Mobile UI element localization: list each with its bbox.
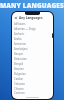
staticText: Any Languages	[19, 16, 43, 20]
button[interactable]: Basque	[12, 51, 53, 56]
staticText: Belarusian	[14, 57, 27, 61]
button[interactable]: Albanian — Shqip	[12, 26, 53, 31]
staticText: Bengali	[14, 62, 24, 66]
button[interactable]: Bosnian	[12, 66, 53, 71]
staticText: Bosnian	[14, 67, 24, 71]
button[interactable]: Catalan	[12, 76, 53, 81]
button[interactable]: Arabic	[12, 36, 53, 41]
button[interactable]: Bulgarian	[12, 71, 53, 76]
button[interactable]: Cebuano	[12, 81, 53, 86]
button[interactable]: Belarusian	[12, 56, 53, 61]
staticText: Afrikaans	[14, 22, 26, 26]
staticText: Catalan	[14, 77, 24, 81]
button[interactable]: Back	[12, 15, 53, 21]
staticText: Armenian	[14, 42, 26, 46]
staticText: Chinese	[14, 87, 24, 91]
staticText: Bulgarian	[14, 72, 26, 76]
button[interactable]: Chinese	[12, 86, 53, 91]
staticText: MANY LANGUAGES	[0, 1, 64, 10]
button[interactable]: Bengali	[12, 61, 53, 66]
button[interactable]: Amharic	[12, 31, 53, 36]
button[interactable]: Afrikaans	[12, 21, 53, 26]
staticText: Corsican	[14, 91, 25, 95]
staticText: Amharic	[14, 32, 25, 36]
button[interactable]: Armenian	[12, 41, 53, 46]
button[interactable]: Back	[14, 16, 18, 20]
button[interactable]: Azerbaijani	[12, 46, 53, 51]
staticText: Azerbaijani	[14, 47, 28, 51]
button[interactable]: Corsican	[12, 91, 53, 95]
staticText: Arabic	[14, 37, 22, 41]
staticText: Albanian — Shqip	[14, 27, 36, 31]
staticText: Cebuano	[14, 82, 25, 86]
staticText: Basque	[14, 52, 24, 56]
